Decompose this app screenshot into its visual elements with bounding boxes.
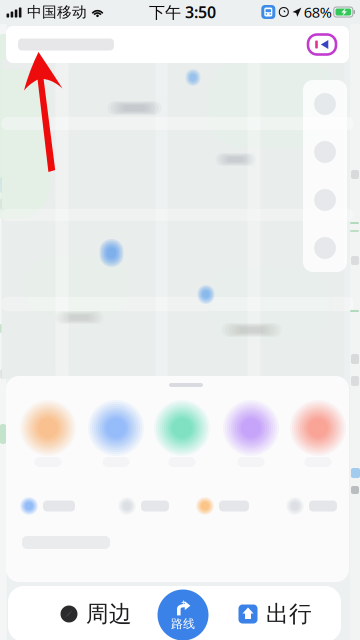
button[interactable]: 分类: [85, 400, 147, 467]
button[interactable]: 分类: [287, 400, 349, 467]
button[interactable]: 周边: [40, 588, 152, 640]
staticText: 路线: [171, 616, 195, 631]
button[interactable]: 快捷入口: [196, 497, 249, 515]
button[interactable]: 快捷入口: [20, 497, 75, 515]
button[interactable]: 地图工具: [303, 224, 347, 272]
staticText: 68%: [304, 2, 332, 22]
button[interactable]: 路线: [156, 588, 210, 640]
button[interactable]: 快捷入口: [118, 497, 169, 515]
button[interactable]: 地图工具: [303, 80, 347, 128]
staticText: 出行: [266, 600, 312, 628]
staticText: 中国移动: [27, 3, 87, 21]
button[interactable]: 快捷入口: [286, 497, 337, 515]
staticText: 下午 3:50: [149, 1, 216, 23]
button[interactable]: 出行: [219, 588, 331, 640]
button[interactable]: 分类: [17, 400, 79, 467]
button[interactable]: 分类: [151, 400, 213, 467]
staticText: 周边: [86, 600, 132, 628]
button[interactable]: 语音助手: [307, 33, 349, 55]
button[interactable]: 地图工具: [303, 128, 347, 176]
button[interactable]: 地图工具: [303, 176, 347, 224]
button[interactable]: 分类: [220, 400, 282, 467]
